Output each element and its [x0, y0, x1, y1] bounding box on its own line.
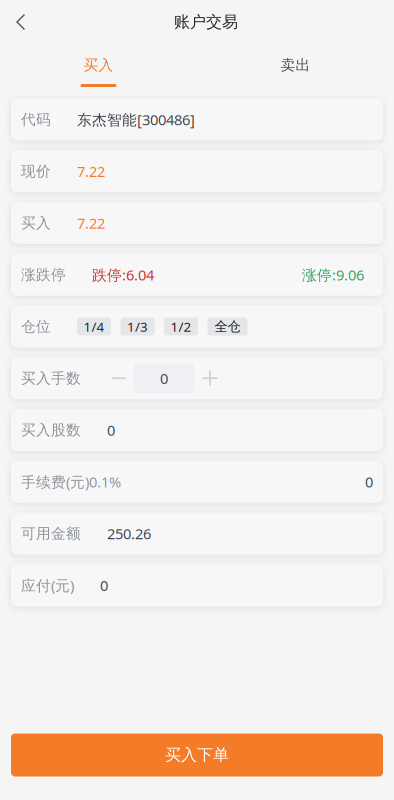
staticText: 买入 — [21, 214, 51, 232]
staticText: 东杰智能[300486] — [77, 110, 195, 129]
button[interactable]: Back — [0, 6, 42, 38]
staticText: 现价 — [21, 162, 51, 180]
button[interactable]: 买入 — [0, 44, 197, 90]
staticText: 涨停:9.06 — [302, 265, 364, 284]
staticText: 7.22 — [77, 213, 105, 233]
staticText: 0 — [160, 368, 168, 388]
staticText: 应付(元) — [21, 575, 74, 595]
staticText: 0 — [107, 420, 115, 440]
staticText: 跌停:6.04 — [92, 265, 154, 284]
staticText: 代码 — [21, 110, 51, 128]
staticText: 卖出 — [280, 56, 310, 74]
staticText: 1/2 — [170, 318, 191, 335]
button[interactable]: 卖出 — [197, 44, 394, 90]
staticText: 可用金额 — [21, 524, 81, 542]
staticText: 买入股数 — [21, 421, 81, 439]
button[interactable]: 全仓 — [207, 317, 247, 335]
staticText: 手续费(元)0.1% — [21, 472, 121, 491]
staticText: 250.26 — [107, 524, 151, 543]
button[interactable]: Increase quantity — [195, 363, 225, 393]
button[interactable]: Decrease quantity — [105, 363, 133, 393]
staticText: 仓位 — [21, 317, 51, 335]
button[interactable]: 1/2 — [164, 317, 198, 335]
staticText: 买入下单 — [165, 745, 229, 765]
staticText: 1/4 — [83, 318, 104, 335]
staticText: 买入 — [83, 56, 113, 74]
staticText: 买入手数 — [21, 369, 81, 387]
staticText: 7.22 — [77, 161, 105, 181]
staticText: 全仓 — [214, 318, 240, 335]
staticText: 1/3 — [127, 318, 148, 335]
staticText: 0 — [365, 472, 373, 491]
staticText: 0 — [100, 575, 108, 595]
button[interactable]: 1/4 — [77, 317, 111, 335]
button[interactable]: 买入下单 — [11, 733, 383, 776]
button[interactable]: 1/3 — [120, 317, 154, 335]
staticText: 涨跌停 — [21, 266, 66, 284]
staticText: 账户交易 — [174, 12, 238, 32]
